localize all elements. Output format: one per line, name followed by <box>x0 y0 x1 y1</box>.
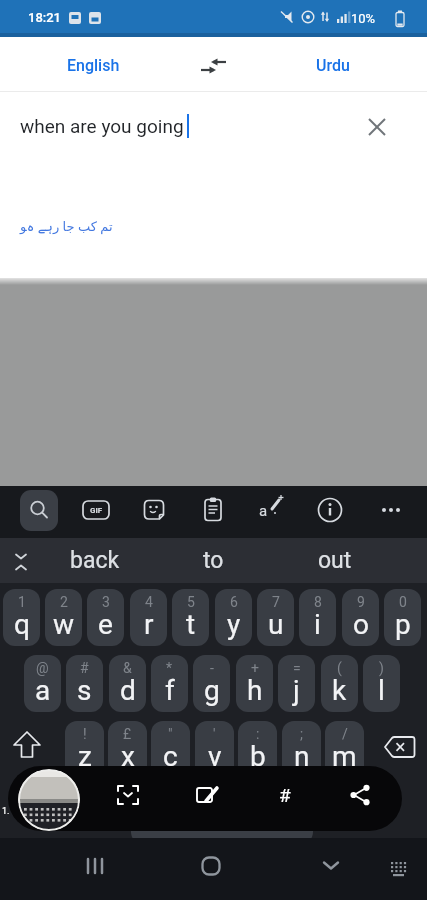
button[interactable] <box>186 773 230 817</box>
staticText: w <box>53 608 75 641</box>
button[interactable]: ' <box>195 721 234 778</box>
button[interactable]: ; <box>282 721 321 778</box>
button[interactable]: Urdu <box>263 45 403 85</box>
button[interactable] <box>308 488 352 532</box>
staticText: v <box>208 740 222 773</box>
button[interactable]: + <box>236 655 273 712</box>
staticText: تم کب جا رہے ہو <box>20 217 113 235</box>
staticText: x <box>121 740 135 773</box>
staticText: * <box>166 660 173 676</box>
button[interactable] <box>315 852 347 880</box>
button[interactable]: £ <box>108 721 147 778</box>
staticText: u <box>268 608 284 641</box>
button[interactable] <box>191 488 235 532</box>
button[interactable]: / <box>325 721 364 778</box>
staticText: 4 <box>145 594 153 610</box>
staticText: g <box>204 674 220 707</box>
staticText: 6 <box>230 594 238 610</box>
staticText: f <box>165 674 175 707</box>
button[interactable] <box>362 112 392 142</box>
button[interactable]: & <box>109 655 146 712</box>
button[interactable] <box>79 850 111 882</box>
button[interactable] <box>369 488 413 532</box>
staticText: + <box>251 660 259 676</box>
staticText: q <box>14 608 30 641</box>
staticText: / <box>342 726 348 742</box>
staticText: # <box>80 660 89 676</box>
button[interactable]: back <box>45 538 145 583</box>
button[interactable]: English <box>23 45 163 85</box>
button[interactable] <box>371 721 427 778</box>
button[interactable] <box>195 850 227 882</box>
button[interactable] <box>20 490 58 531</box>
staticText: i <box>314 608 321 641</box>
button[interactable] <box>193 48 235 84</box>
button[interactable]: a <box>249 488 293 532</box>
staticText: English <box>67 56 120 75</box>
button[interactable] <box>8 548 36 576</box>
button[interactable]: ! <box>65 721 104 778</box>
button[interactable]: to <box>165 538 261 583</box>
button[interactable] <box>106 773 150 817</box>
staticText: t <box>186 608 196 641</box>
staticText: : <box>256 726 260 742</box>
button[interactable]: 8 <box>299 589 336 646</box>
button[interactable]: 0 <box>384 589 421 646</box>
button[interactable]: @ <box>24 655 61 712</box>
staticText: Urdu <box>316 56 350 75</box>
button[interactable]: 5 <box>172 589 209 646</box>
staticText: e <box>98 608 113 641</box>
staticText: p <box>395 608 411 641</box>
button[interactable]: = <box>278 655 315 712</box>
staticText: n <box>294 740 310 773</box>
staticText: 1. <box>2 806 10 817</box>
staticText: 5 <box>187 594 195 610</box>
staticText: " <box>168 726 173 742</box>
button[interactable]: - <box>193 655 230 712</box>
button[interactable]: 6 <box>215 589 252 646</box>
staticText: - <box>210 660 214 676</box>
staticText: 2 <box>60 594 68 610</box>
staticText: y <box>227 608 241 641</box>
button[interactable] <box>18 769 80 831</box>
button[interactable] <box>2 721 58 778</box>
button[interactable]: ) <box>363 655 400 712</box>
button[interactable]: ( <box>321 655 358 712</box>
staticText: l <box>378 674 385 707</box>
staticText: 7 <box>272 594 280 610</box>
staticText: ) <box>379 660 384 676</box>
staticText: z <box>78 740 92 773</box>
staticText: 3 <box>102 594 110 610</box>
button[interactable]: " <box>151 721 190 778</box>
staticText: r <box>144 608 154 641</box>
staticText: 8 <box>314 594 322 610</box>
button[interactable]: 7 <box>257 589 294 646</box>
button[interactable]: 3 <box>87 589 124 646</box>
button[interactable] <box>338 773 382 817</box>
staticText: m <box>332 740 357 773</box>
staticText: back <box>70 547 120 574</box>
staticText: a <box>35 674 51 707</box>
button[interactable]: GIF <box>74 488 118 532</box>
button[interactable] <box>386 854 412 880</box>
staticText: @ <box>36 660 49 676</box>
button[interactable]: 4 <box>130 589 167 646</box>
staticText: 1 <box>18 594 26 610</box>
button[interactable]: * <box>151 655 188 712</box>
staticText: c <box>163 740 178 773</box>
staticText: GIF <box>90 506 103 515</box>
staticText: # <box>279 784 291 806</box>
button[interactable]: 1 <box>3 589 40 646</box>
button[interactable]: : <box>238 721 277 778</box>
button[interactable]: 9 <box>342 589 379 646</box>
button[interactable]: 2 <box>45 589 82 646</box>
button[interactable]: # <box>263 773 307 817</box>
button[interactable]: out <box>287 538 383 583</box>
button[interactable] <box>132 488 176 532</box>
staticText: j <box>293 674 300 707</box>
button[interactable]: # <box>66 655 103 712</box>
staticText: ; <box>300 726 303 742</box>
staticText: 10% <box>351 11 376 26</box>
staticText: & <box>123 660 132 676</box>
staticText: to <box>203 547 224 574</box>
